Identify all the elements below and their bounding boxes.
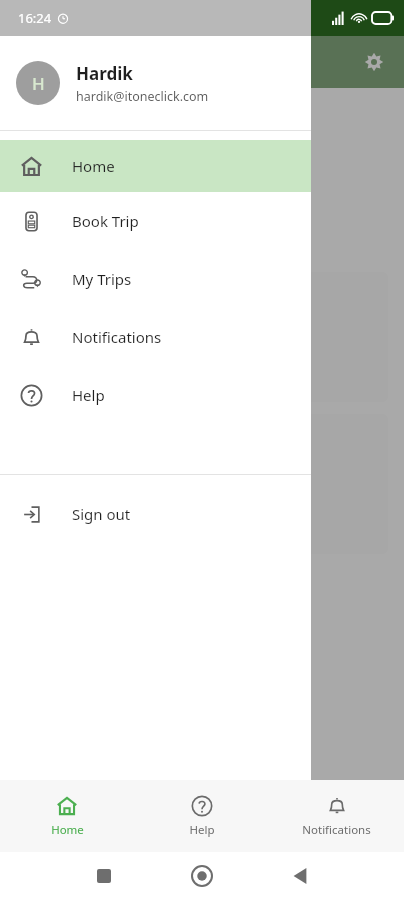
button[interactable]: Recent apps (86, 858, 122, 894)
staticText: Car (165, 157, 240, 217)
staticText: Help (189, 822, 215, 838)
staticText: Notifications (302, 822, 371, 838)
staticText: Hardik (76, 62, 133, 85)
button[interactable] (16, 414, 388, 554)
button[interactable]: Home (0, 140, 311, 192)
button[interactable]: Notifications (269, 780, 404, 852)
button[interactable]: Book Trip (0, 192, 311, 250)
staticText: 16:24 (18, 9, 52, 27)
staticText: Help (72, 385, 105, 405)
staticText: Sign out (72, 504, 131, 524)
button[interactable]: Sign out (0, 485, 311, 543)
button[interactable]: Back (282, 858, 318, 894)
staticText: Notifications (72, 327, 162, 347)
staticText: My Trips (72, 269, 132, 289)
button[interactable]: Home (0, 780, 134, 852)
button[interactable] (16, 272, 388, 402)
button[interactable]: Notifications (0, 308, 311, 366)
staticText: hardik@itoneclick.com (76, 88, 209, 105)
staticText: Home (51, 822, 84, 838)
button[interactable]: Help (134, 780, 269, 852)
button[interactable]: My Trips (0, 250, 311, 308)
button[interactable]: Home (184, 858, 220, 894)
staticText: H (32, 72, 45, 95)
staticText: Home (72, 156, 115, 176)
staticText: Book Trip (72, 211, 139, 231)
button[interactable]: Settings (352, 40, 396, 84)
button[interactable]: Help (0, 366, 311, 424)
